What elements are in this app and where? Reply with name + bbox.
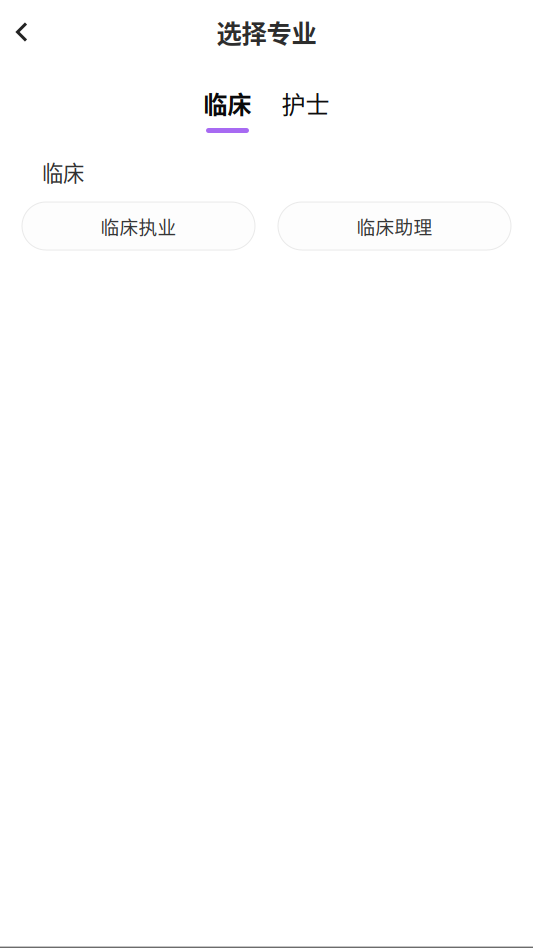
staticText: 临床	[42, 157, 84, 187]
staticText: 选择专业	[216, 14, 316, 50]
button[interactable]: 临床执业	[22, 202, 255, 250]
button[interactable]: 临床助理	[278, 202, 511, 250]
staticText: 临床助理	[356, 212, 432, 239]
staticText: 临床	[203, 86, 251, 120]
staticText: 临床执业	[100, 212, 176, 239]
button[interactable]: Back	[0, 10, 46, 54]
staticText: 护士	[281, 86, 329, 120]
button[interactable]: 护士	[281, 90, 329, 133]
button[interactable]: 临床	[203, 90, 251, 133]
